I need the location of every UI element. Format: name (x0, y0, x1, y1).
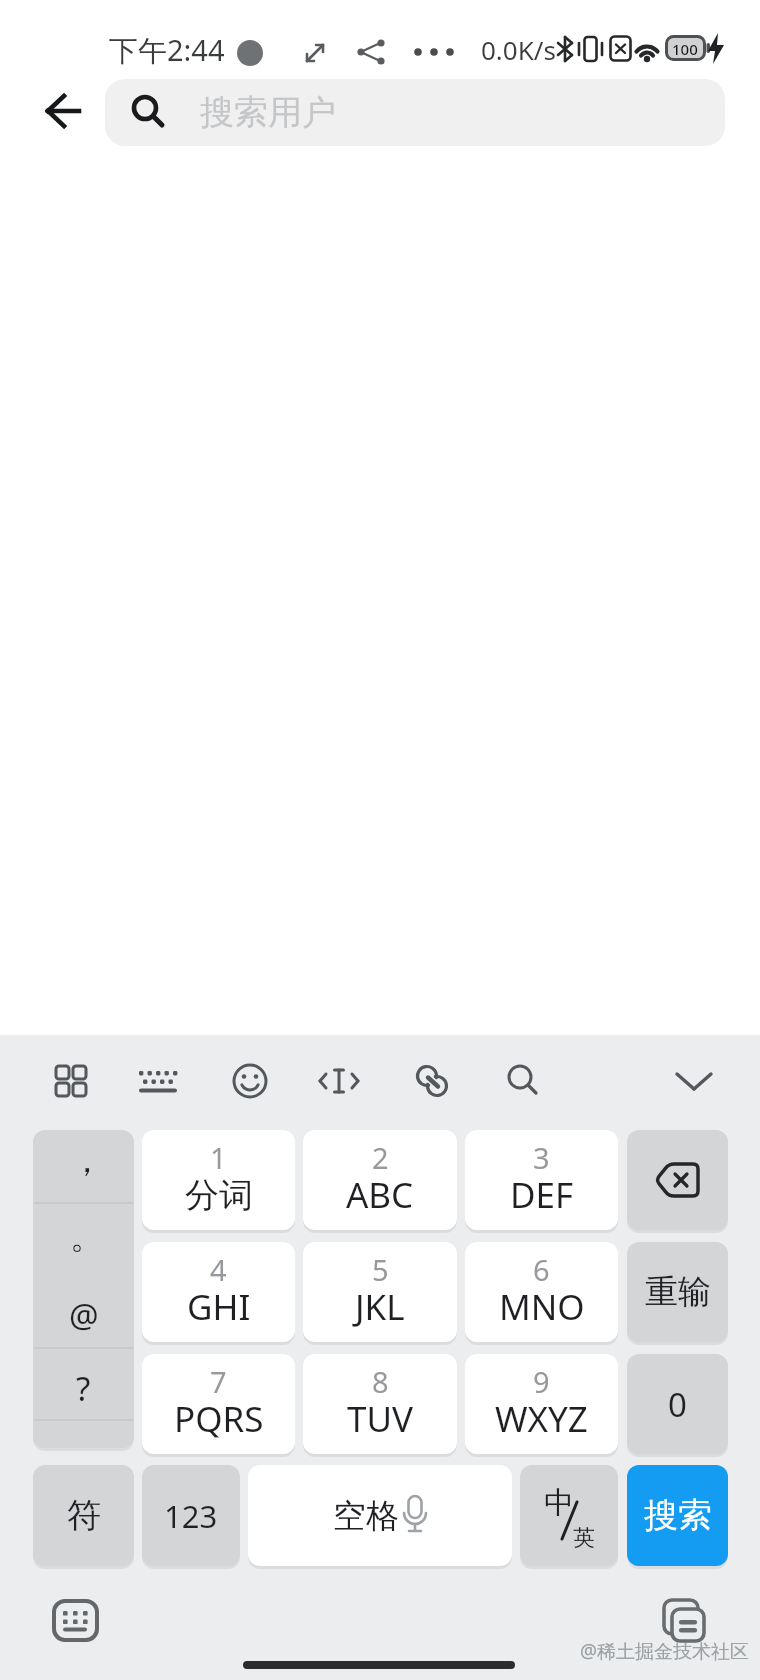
button[interactable] (303, 1242, 457, 1342)
staticText: 中 (544, 1484, 574, 1522)
button[interactable] (670, 1057, 718, 1105)
button[interactable] (465, 1242, 618, 1342)
staticText: 搜索用户 (200, 91, 336, 131)
button[interactable] (33, 1465, 134, 1566)
staticText: 8 (372, 1362, 389, 1401)
staticText: 123 (164, 1495, 218, 1537)
staticText: 0 (668, 1382, 687, 1427)
staticText: 英 (573, 1524, 595, 1550)
staticText: MNO (499, 1283, 585, 1331)
staticText: 4 (210, 1250, 227, 1289)
button[interactable] (627, 1242, 728, 1342)
button[interactable] (142, 1130, 295, 1230)
button[interactable] (303, 1354, 457, 1454)
button[interactable] (105, 79, 725, 146)
staticText: GHI (187, 1283, 251, 1331)
staticText: 分词 (185, 1174, 253, 1217)
button[interactable] (33, 1130, 134, 1448)
staticText: 2 (372, 1138, 389, 1177)
button[interactable] (248, 1465, 512, 1566)
staticText: 9 (533, 1362, 550, 1401)
staticText: 5 (372, 1250, 389, 1289)
staticText: ABC (346, 1171, 414, 1219)
staticText: 7 (210, 1362, 227, 1401)
button[interactable] (50, 1597, 102, 1645)
staticText: 3 (533, 1138, 550, 1177)
staticText: 符 (67, 1494, 101, 1537)
button[interactable] (142, 1242, 295, 1342)
button[interactable] (142, 1465, 240, 1566)
button[interactable] (499, 1057, 547, 1105)
button[interactable] (142, 1354, 295, 1454)
staticText: 下午2:44 (109, 30, 225, 68)
button[interactable] (315, 1057, 363, 1105)
button[interactable] (410, 1057, 458, 1105)
button[interactable] (465, 1130, 618, 1230)
staticText: 100 (672, 39, 698, 59)
button[interactable] (465, 1354, 618, 1454)
button[interactable] (303, 1130, 457, 1230)
staticText: @ (69, 1293, 99, 1333)
button[interactable] (38, 86, 88, 136)
staticText: @稀土掘金技术社区 (580, 1638, 750, 1664)
staticText: 搜索 (644, 1494, 712, 1537)
staticText: WXYZ (495, 1395, 588, 1443)
button[interactable] (47, 1057, 95, 1105)
button[interactable] (627, 1354, 728, 1454)
staticText: PQRS (174, 1395, 264, 1443)
button[interactable] (627, 1130, 728, 1230)
staticText: 重输 (645, 1271, 711, 1313)
button[interactable] (520, 1465, 618, 1566)
staticText: 6 (533, 1250, 550, 1289)
staticText: ? (76, 1366, 91, 1406)
staticText: JKL (355, 1283, 405, 1331)
staticText: DEF (510, 1171, 574, 1219)
button[interactable] (627, 1465, 728, 1566)
button[interactable] (656, 1592, 712, 1648)
staticText: 。 (70, 1215, 104, 1258)
button[interactable] (134, 1057, 182, 1105)
staticText: TUV (347, 1395, 414, 1443)
staticText: 1 (210, 1138, 227, 1177)
staticText: 空格 (333, 1495, 399, 1537)
staticText: 0.0K/s (481, 32, 556, 67)
staticText: ， (70, 1139, 104, 1182)
button[interactable] (226, 1057, 274, 1105)
